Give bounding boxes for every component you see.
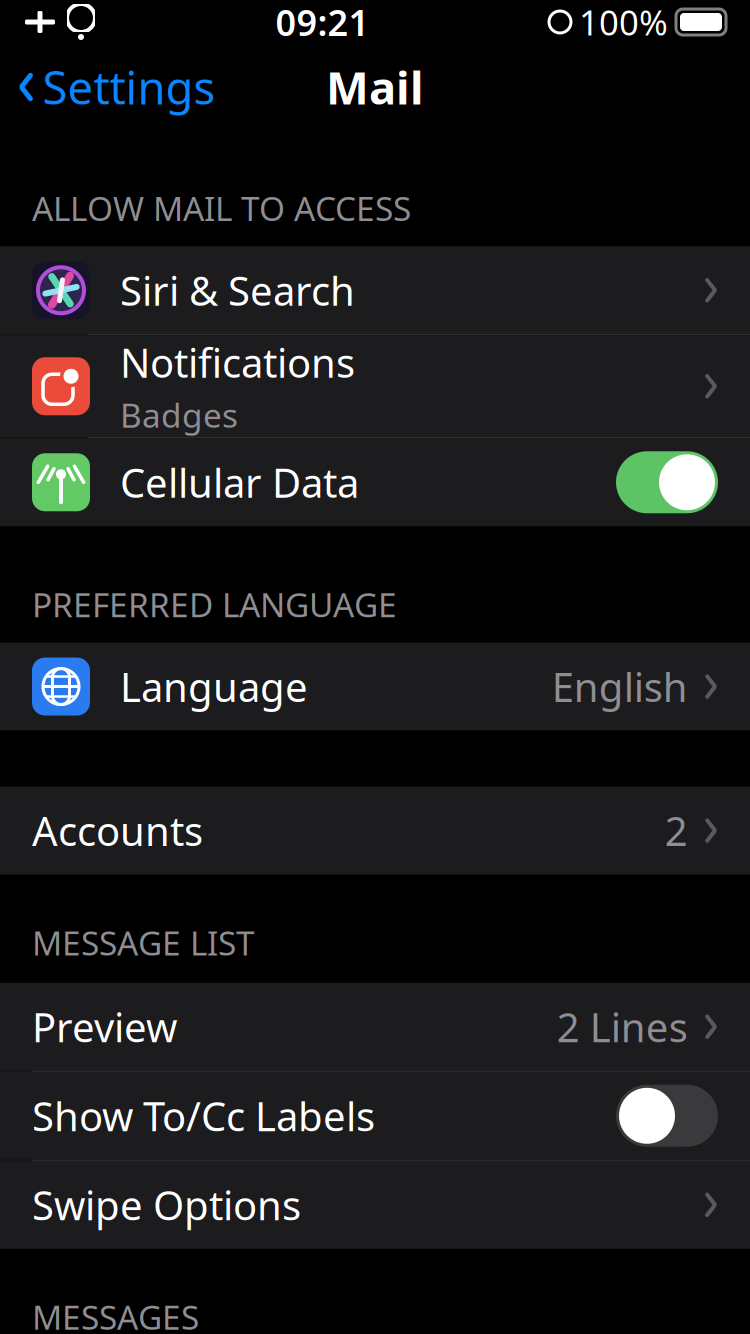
button[interactable]: Accounts xyxy=(0,786,750,874)
staticText: PREFERRED LANGUAGE xyxy=(32,582,397,627)
staticText: Accounts xyxy=(32,804,203,857)
staticText: Mail xyxy=(326,57,424,117)
staticText: Language xyxy=(120,660,308,713)
staticText: Settings xyxy=(42,57,215,117)
button[interactable]: Language xyxy=(0,642,750,730)
button[interactable]: Preview xyxy=(0,983,750,1071)
staticText: Preview xyxy=(32,1000,177,1053)
staticText: English xyxy=(552,660,688,713)
staticText: MESSAGE LIST xyxy=(32,920,255,965)
staticText: Siri & Search xyxy=(120,264,355,317)
staticText: MESSAGES xyxy=(32,1295,199,1334)
staticText: 100% xyxy=(579,0,668,45)
button[interactable]: Settings xyxy=(0,44,233,130)
button[interactable]: Siri & Search xyxy=(0,246,750,334)
staticText: Show To/Cc Labels xyxy=(32,1089,375,1142)
staticText: 2 Lines xyxy=(557,1000,688,1053)
staticText: 2 xyxy=(665,804,688,857)
staticText: 09:21 xyxy=(275,0,369,46)
staticText: ALLOW MAIL TO ACCESS xyxy=(32,186,411,230)
button[interactable]: Cellular Data xyxy=(0,438,750,526)
staticText: Cellular Data xyxy=(120,456,359,509)
button[interactable]: Show To/Cc Labels xyxy=(0,1072,750,1160)
staticText: Swipe Options xyxy=(32,1178,301,1231)
staticText: Notifications xyxy=(120,336,355,389)
button[interactable]: Notifications xyxy=(0,335,750,437)
button[interactable]: Swipe Options xyxy=(0,1161,750,1249)
staticText: Badges xyxy=(120,393,238,437)
